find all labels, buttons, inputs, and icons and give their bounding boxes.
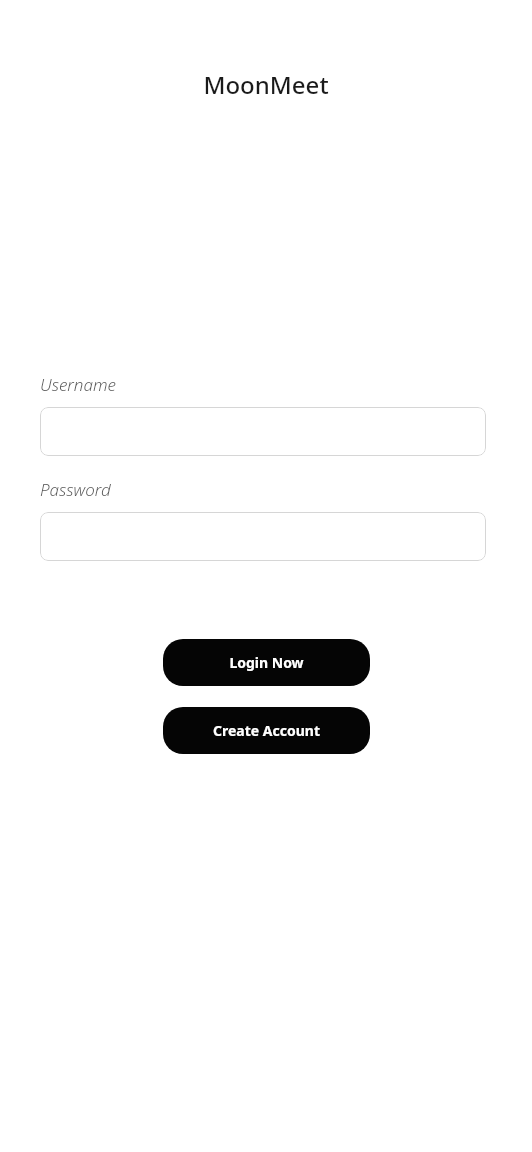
staticText: Username: [40, 373, 116, 396]
staticText: Login Now: [229, 653, 304, 672]
staticText: MoonMeet: [203, 68, 329, 101]
button[interactable]: Create Account: [163, 707, 370, 754]
staticText: Password: [40, 478, 111, 501]
button[interactable]: Username input field: [40, 407, 486, 456]
staticText: Create Account: [213, 721, 320, 740]
button[interactable]: Password input field: [40, 512, 486, 561]
button[interactable]: Login Now: [163, 639, 370, 686]
